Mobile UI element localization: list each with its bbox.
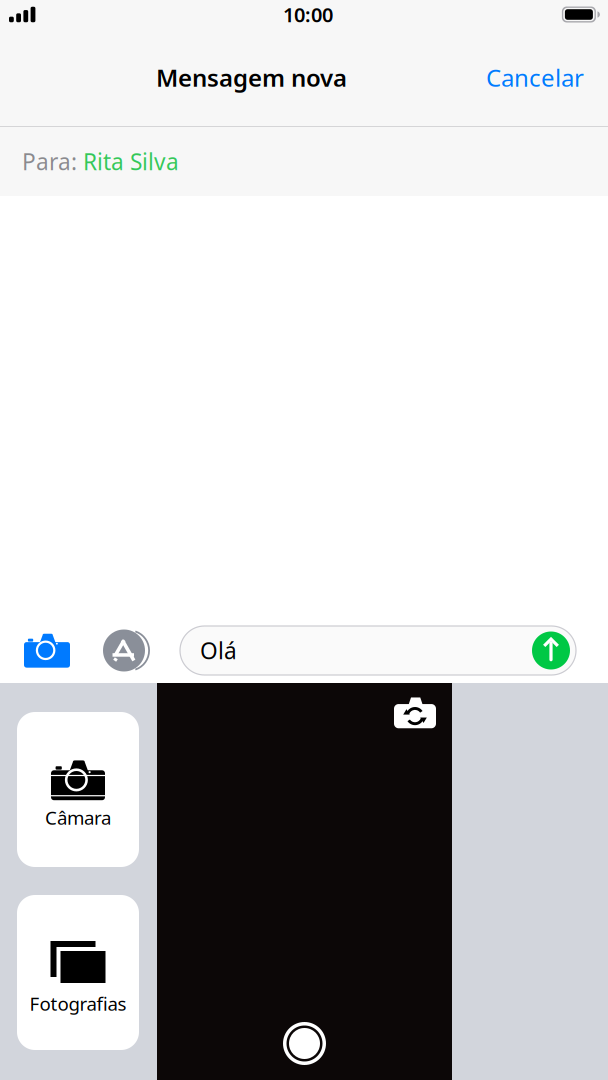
button[interactable]: Cancelar <box>458 42 608 113</box>
button[interactable]: Fotografias <box>17 895 139 1050</box>
staticText: Olá <box>200 635 237 665</box>
staticText: Para: <box>22 146 83 176</box>
button[interactable]: Tirar fotografia <box>273 1012 336 1075</box>
button[interactable]: Para: <box>0 127 608 196</box>
button[interactable]: Câmara <box>17 712 139 867</box>
staticText: Rita Silva <box>83 146 179 176</box>
button[interactable]: App Store <box>82 618 163 682</box>
staticText: Cancelar <box>486 62 584 93</box>
staticText: Câmara <box>45 805 111 830</box>
button[interactable]: Câmara <box>0 622 82 679</box>
staticText: Fotografias <box>29 991 126 1016</box>
button[interactable]: Mudar de câmara <box>384 683 452 738</box>
staticText: Mensagem nova <box>156 62 347 93</box>
staticText: 10:00 <box>283 1 333 28</box>
